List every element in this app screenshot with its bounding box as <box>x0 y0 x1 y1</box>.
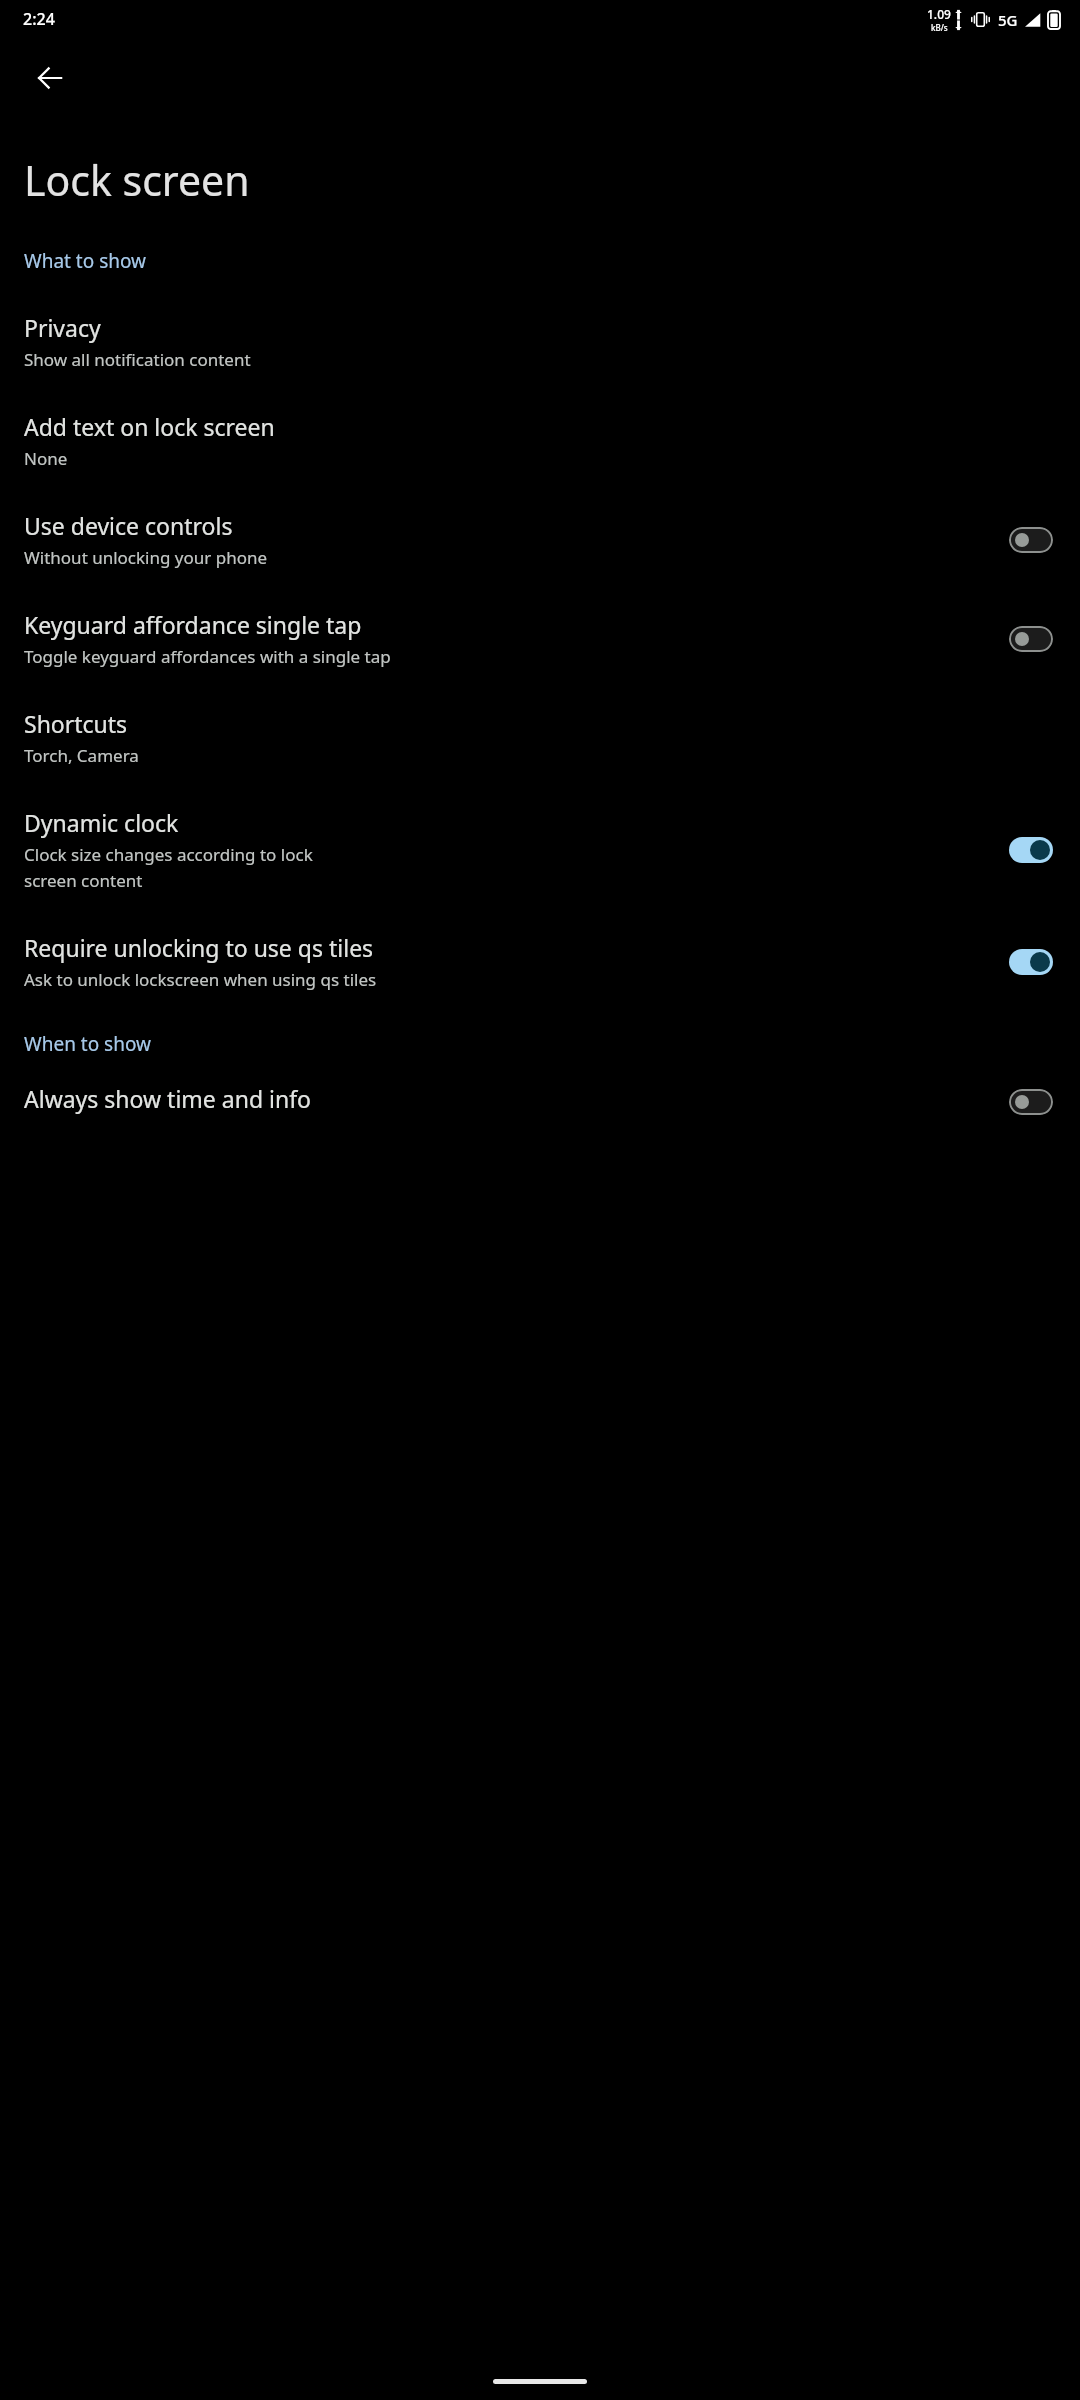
staticText: None <box>24 447 68 470</box>
staticText: Without unlocking your phone <box>24 546 268 569</box>
staticText: Ask to unlock lockscreen when using qs t… <box>24 968 377 991</box>
button[interactable]: Dynamic clock <box>0 787 1080 912</box>
staticText: Show all notification content <box>24 348 251 371</box>
staticText: kB/s <box>931 22 948 33</box>
button[interactable]: Toggle off <box>1009 626 1053 652</box>
button[interactable]: Keyguard affordance single tap <box>0 589 1080 688</box>
staticText: 5G <box>998 10 1018 30</box>
staticText: Torch, Camera <box>24 744 139 767</box>
button[interactable]: Privacy <box>0 292 1080 391</box>
button[interactable]: Back <box>22 50 78 106</box>
button[interactable]: Toggle on <box>1009 949 1053 975</box>
button[interactable]: Toggle off <box>1009 1089 1053 1115</box>
button[interactable]: Toggle off <box>1009 527 1053 553</box>
button[interactable]: Always show time and info <box>0 1083 1080 1163</box>
staticText: Lock screen <box>24 152 250 208</box>
button[interactable]: Require unlocking to use qs tiles <box>0 912 1080 1011</box>
button[interactable]: Toggle on <box>1009 837 1053 863</box>
staticText: Require unlocking to use qs tiles <box>24 932 374 963</box>
staticText: 1.09 <box>927 6 951 22</box>
staticText: When to show <box>24 1031 151 1057</box>
staticText: Clock size changes according to lock scr… <box>24 843 324 892</box>
staticText: What to show <box>24 248 147 274</box>
staticText: Dynamic clock <box>24 807 179 838</box>
staticText: Keyguard affordance single tap <box>24 609 362 640</box>
staticText: Add text on lock screen <box>24 411 275 442</box>
button[interactable]: Use device controls <box>0 490 1080 589</box>
staticText: Always show time and info <box>24 1083 311 1114</box>
button[interactable]: Shortcuts <box>0 688 1080 787</box>
staticText: Privacy <box>24 312 101 343</box>
staticText: Toggle keyguard affordances with a singl… <box>24 645 391 668</box>
staticText: 2:24 <box>23 8 55 30</box>
staticText: Use device controls <box>24 510 233 541</box>
button[interactable]: Add text on lock screen <box>0 391 1080 490</box>
staticText: Shortcuts <box>24 708 128 739</box>
